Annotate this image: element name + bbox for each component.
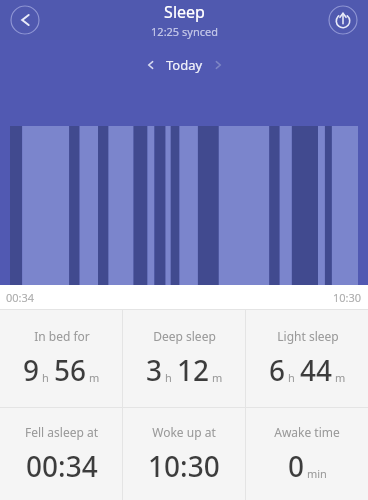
staticText: Light sleep: [277, 328, 339, 344]
staticText: Woke up at: [152, 424, 216, 440]
staticText: 9: [23, 351, 40, 389]
button[interactable]: Light sleep: [246, 310, 368, 407]
staticText: m: [335, 370, 346, 385]
staticText: Today: [166, 56, 203, 74]
staticText: 44: [300, 351, 333, 389]
button[interactable]: Deep sleep: [123, 310, 245, 407]
staticText: 3: [146, 351, 163, 389]
staticText: Awake time: [274, 424, 340, 440]
button[interactable]: Sync: [328, 5, 358, 35]
staticText: 56: [54, 351, 87, 389]
staticText: 00:34: [26, 447, 98, 485]
staticText: 12:25 synced: [151, 24, 218, 39]
button[interactable]: Today: [144, 56, 225, 74]
staticText: h: [165, 370, 172, 385]
staticText: Sleep: [164, 1, 205, 23]
staticText: h: [42, 370, 49, 385]
staticText: 00:34: [6, 290, 35, 305]
staticText: Fell asleep at: [25, 424, 98, 440]
staticText: 6: [269, 351, 286, 389]
staticText: min: [307, 466, 327, 481]
staticText: 12: [177, 351, 210, 389]
staticText: m: [212, 370, 223, 385]
staticText: m: [89, 370, 100, 385]
staticText: 0: [288, 447, 305, 485]
staticText: 10:30: [148, 447, 220, 485]
button[interactable]: Awake time: [246, 408, 368, 500]
staticText: Deep sleep: [153, 328, 216, 344]
staticText: h: [288, 370, 295, 385]
button[interactable]: Back: [10, 5, 40, 35]
button[interactable]: In bed for: [0, 310, 122, 407]
button[interactable]: Fell asleep at: [0, 408, 122, 500]
staticText: In bed for: [34, 328, 90, 344]
button[interactable]: Woke up at: [123, 408, 245, 500]
staticText: 10:30: [333, 290, 362, 305]
